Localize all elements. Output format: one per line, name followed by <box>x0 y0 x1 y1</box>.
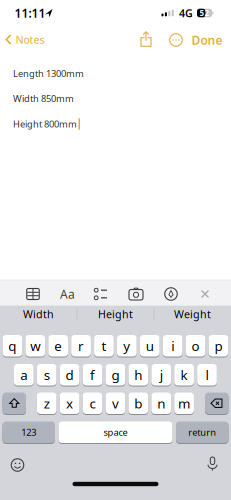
button[interactable]: x <box>60 392 79 414</box>
staticText: k <box>181 366 188 384</box>
staticText: j <box>160 366 163 384</box>
staticText: q <box>8 337 16 355</box>
staticText: r <box>78 337 84 355</box>
button[interactable] <box>2 392 26 414</box>
button[interactable]: s <box>37 363 56 386</box>
button[interactable]: h <box>128 363 148 386</box>
button[interactable]: v <box>105 392 125 414</box>
button[interactable] <box>94 288 107 300</box>
button[interactable]: z <box>37 392 56 414</box>
staticText: d <box>66 366 74 384</box>
button[interactable] <box>129 288 143 300</box>
button[interactable]: l <box>197 363 217 386</box>
staticText: return <box>188 426 216 438</box>
button[interactable]: t <box>94 334 114 357</box>
button[interactable] <box>205 392 228 414</box>
button[interactable]: Aa <box>59 287 75 301</box>
staticText: m <box>178 394 190 412</box>
staticText: Height <box>98 307 133 321</box>
button[interactable]: Notes <box>5 28 44 50</box>
button[interactable]: o <box>186 334 205 357</box>
staticText: Width <box>23 307 54 321</box>
button[interactable]: e <box>48 334 68 357</box>
button[interactable] <box>169 33 183 47</box>
button[interactable]: c <box>83 392 102 414</box>
staticText: f <box>90 366 95 384</box>
staticText: Weight <box>174 307 211 321</box>
button[interactable]: u <box>140 334 160 357</box>
staticText: space <box>103 426 127 438</box>
button[interactable]: b <box>128 392 148 414</box>
staticText: e <box>54 337 62 355</box>
staticText: 11:11 <box>14 5 45 21</box>
button[interactable]: a <box>14 363 34 386</box>
staticText: t <box>101 337 106 355</box>
staticText: 52 <box>199 8 209 18</box>
button[interactable] <box>27 288 39 299</box>
staticText: Width 850mm <box>13 92 74 105</box>
staticText: Aa <box>60 286 75 302</box>
button[interactable]: 123 <box>2 421 55 443</box>
button[interactable]: space <box>58 421 172 443</box>
button[interactable]: r <box>71 334 91 357</box>
button[interactable] <box>201 290 209 298</box>
button[interactable]: Height <box>77 302 154 326</box>
staticText: n <box>157 394 165 412</box>
button[interactable] <box>140 31 152 47</box>
button[interactable]: j <box>151 363 171 386</box>
button[interactable]: m <box>174 392 194 414</box>
button[interactable]: n <box>151 392 171 414</box>
staticText: g <box>111 366 119 384</box>
button[interactable]: q <box>2 334 22 357</box>
button[interactable]: f <box>83 363 102 386</box>
button[interactable]: k <box>174 363 194 386</box>
button[interactable]: Weight <box>154 302 231 326</box>
staticText: Notes <box>15 32 44 47</box>
staticText: v <box>112 394 119 412</box>
button[interactable] <box>165 288 177 300</box>
staticText: Height 800mm <box>13 118 77 130</box>
button[interactable]: i <box>163 334 182 357</box>
staticText: 4G <box>179 6 193 20</box>
button[interactable]: g <box>105 363 125 386</box>
staticText: c <box>89 394 95 412</box>
staticText: y <box>123 337 130 355</box>
button[interactable]: d <box>60 363 79 386</box>
button[interactable]: p <box>209 334 228 357</box>
staticText: b <box>134 394 142 412</box>
staticText: Length 1300mm <box>13 67 84 80</box>
staticText: 123 <box>21 426 36 438</box>
staticText: o <box>191 337 199 355</box>
staticText: x <box>66 394 73 412</box>
staticText: i <box>171 337 174 355</box>
staticText: s <box>44 366 50 384</box>
staticText: u <box>146 337 154 355</box>
button[interactable]: y <box>117 334 137 357</box>
button[interactable]: Done <box>190 30 224 50</box>
staticText: h <box>134 366 142 384</box>
button[interactable] <box>206 457 218 471</box>
staticText: l <box>205 366 208 384</box>
staticText: Done <box>191 32 222 48</box>
staticText: a <box>20 366 27 384</box>
staticText: z <box>44 394 50 412</box>
staticText: p <box>214 337 222 355</box>
button[interactable]: w <box>25 334 45 357</box>
button[interactable]: return <box>176 421 228 443</box>
button[interactable]: Width <box>0 302 77 326</box>
staticText: w <box>30 337 40 355</box>
button[interactable] <box>11 459 24 471</box>
